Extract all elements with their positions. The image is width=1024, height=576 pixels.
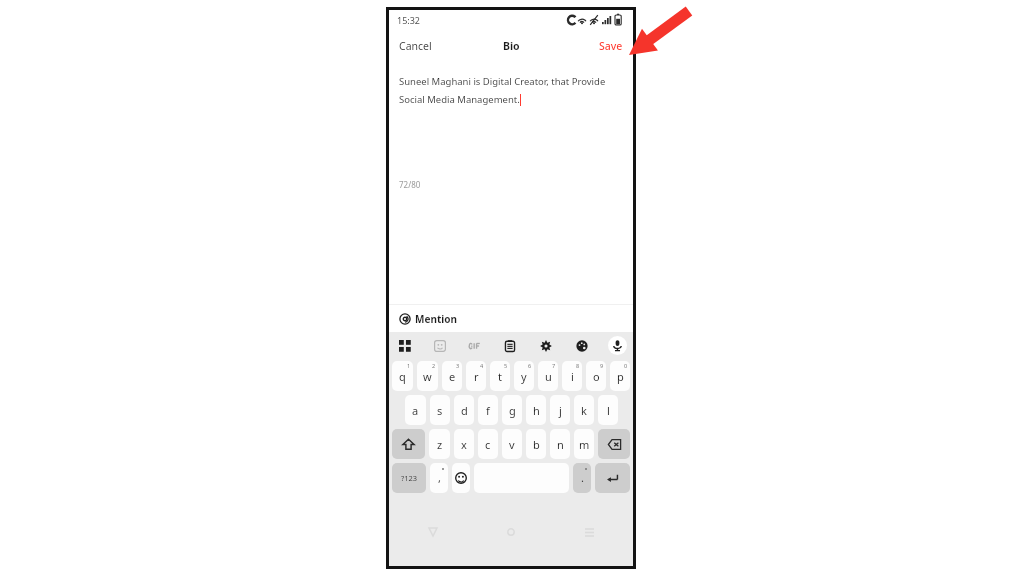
button[interactable]: p (610, 361, 630, 391)
button[interactable]: Save (589, 32, 633, 60)
staticText: j (559, 403, 562, 418)
button[interactable]: Clipboard (500, 336, 519, 355)
button[interactable]: x (454, 429, 474, 459)
button[interactable]: Cancel (389, 32, 442, 60)
button[interactable]: s (430, 395, 450, 425)
button[interactable]: . (573, 463, 591, 493)
staticText: 1 (407, 362, 411, 369)
staticText: Bio (503, 39, 520, 53)
staticText: m (579, 437, 590, 452)
staticText: 6 (528, 362, 532, 369)
button[interactable]: c (478, 429, 498, 459)
staticText: h (533, 403, 540, 418)
button[interactable]: , (430, 463, 448, 493)
staticText: s (437, 403, 443, 418)
staticText: n (557, 437, 564, 452)
button[interactable]: b (526, 429, 546, 459)
staticText: 9 (600, 362, 604, 369)
button[interactable]: Settings (536, 336, 555, 355)
staticText: 7 (552, 362, 556, 369)
button[interactable]: Recents (581, 524, 597, 540)
button[interactable]: u (538, 361, 558, 391)
staticText: p (617, 369, 624, 384)
staticText: g (509, 403, 516, 418)
button[interactable]: Themes (572, 336, 591, 355)
button[interactable]: o (586, 361, 606, 391)
staticText: 5 (504, 362, 508, 369)
button[interactable]: k (574, 395, 594, 425)
staticText: 8 (576, 362, 580, 369)
staticText: . (581, 470, 584, 485)
button[interactable]: d (454, 395, 474, 425)
button[interactable]: a (405, 395, 426, 425)
staticText: c (485, 437, 491, 452)
button[interactable]: Back (425, 524, 441, 540)
staticText: 72/80 (399, 179, 421, 190)
staticText: 4 (480, 362, 484, 369)
staticText: e (449, 369, 456, 384)
button[interactable]: m (574, 429, 594, 459)
staticText: Save (599, 39, 623, 53)
button[interactable]: g (502, 395, 522, 425)
button[interactable]: GIF (465, 336, 484, 355)
button[interactable]: h (526, 395, 546, 425)
staticText: x (461, 437, 467, 452)
button[interactable]: ?123 (392, 463, 426, 493)
button[interactable]: Home (503, 524, 519, 540)
staticText: z (437, 437, 443, 452)
button[interactable]: Voice input (608, 336, 627, 355)
button[interactable]: v (502, 429, 522, 459)
staticText: ?123 (401, 473, 418, 483)
staticText: b (533, 437, 540, 452)
staticText: Suneel Maghani is Digital Creator, that … (399, 75, 606, 88)
staticText: f (486, 403, 490, 418)
button[interactable]: Shift (392, 429, 425, 459)
button[interactable]: Enter (595, 463, 630, 493)
button[interactable]: q (392, 361, 413, 391)
staticText: i (571, 369, 574, 384)
button[interactable]: y (514, 361, 534, 391)
button[interactable]: Backspace (598, 429, 630, 459)
staticText: r (474, 369, 479, 384)
staticText: 0 (624, 362, 628, 369)
staticText: 3 (456, 362, 460, 369)
button[interactable]: r (466, 361, 486, 391)
button[interactable]: Stickers (430, 336, 449, 355)
staticText: q (399, 369, 406, 384)
button[interactable]: Apps (395, 336, 414, 355)
staticText: Social Media Management. (399, 93, 520, 106)
staticText: u (545, 369, 552, 384)
staticText: v (509, 437, 515, 452)
staticText: y (521, 369, 527, 384)
staticText: Mention (415, 312, 457, 326)
staticText: , (438, 470, 441, 485)
button[interactable]: l (598, 395, 618, 425)
staticText: d (461, 403, 468, 418)
button[interactable]: t (490, 361, 510, 391)
button[interactable]: n (550, 429, 570, 459)
staticText: k (581, 403, 587, 418)
staticText: l (607, 403, 610, 418)
staticText: 15:32 (397, 14, 421, 26)
staticText: Cancel (399, 39, 432, 53)
button[interactable]: Suneel Maghani is Digital Creator, that … (389, 62, 633, 304)
button[interactable]: j (550, 395, 570, 425)
button[interactable]: w (417, 361, 438, 391)
button[interactable]: e (442, 361, 462, 391)
button[interactable]: Emoji (452, 463, 470, 493)
staticText: a (412, 403, 419, 418)
button[interactable]: f (478, 395, 498, 425)
button[interactable]: Bio (498, 34, 525, 58)
staticText: 2 (432, 362, 436, 369)
staticText: w (423, 369, 432, 384)
staticText: t (498, 369, 502, 384)
staticText: o (593, 369, 600, 384)
button[interactable]: i (562, 361, 582, 391)
button[interactable]: z (429, 429, 450, 459)
button[interactable]: Mention (389, 305, 633, 332)
